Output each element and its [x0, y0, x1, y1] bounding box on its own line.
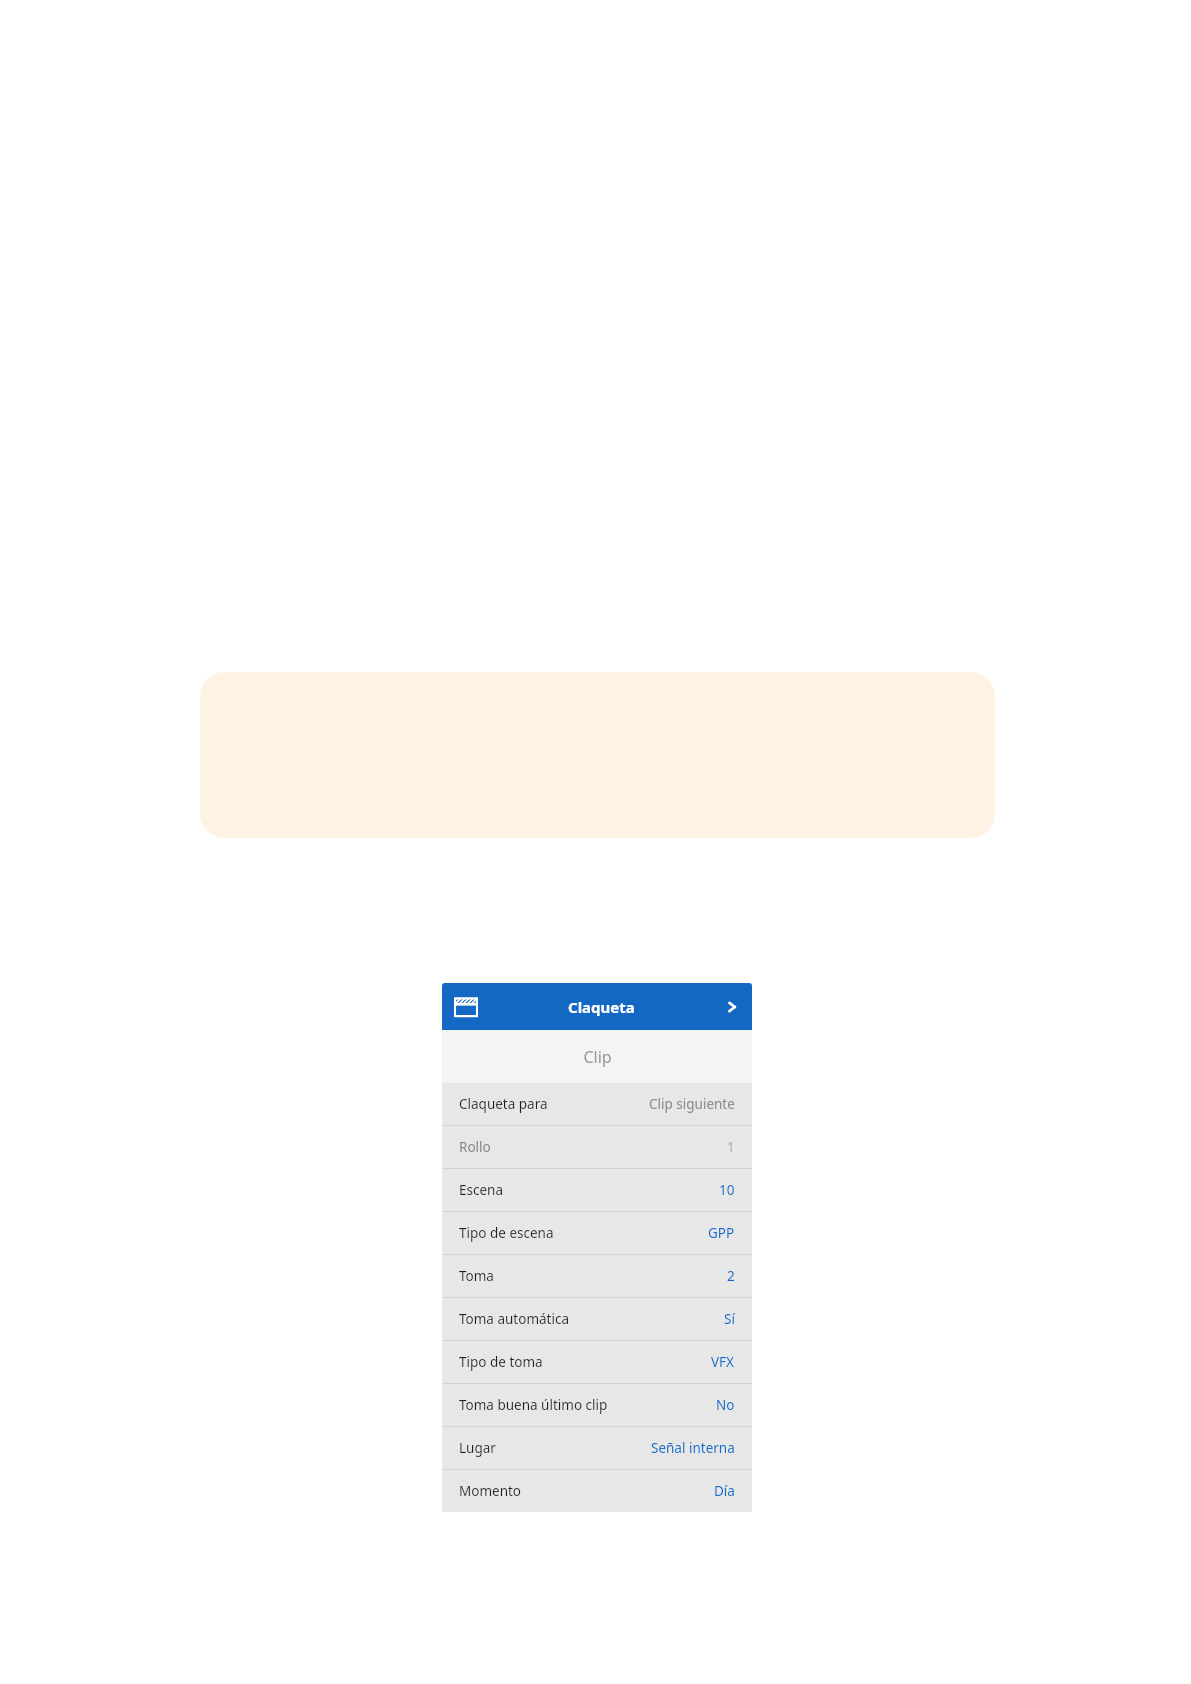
- staticText: Rollo: [459, 1138, 491, 1156]
- button[interactable]: Rollo: [442, 1126, 752, 1168]
- staticText: Lugar: [459, 1439, 496, 1457]
- staticText: 10: [719, 1181, 735, 1199]
- staticText: Tipo de toma: [459, 1353, 543, 1371]
- staticText: 1: [727, 1138, 735, 1156]
- staticText: Sí: [724, 1310, 735, 1328]
- staticText: Claqueta para: [459, 1095, 548, 1113]
- staticText: Escena: [459, 1181, 503, 1199]
- button[interactable]: Toma: [442, 1255, 752, 1297]
- button[interactable]: Escena: [442, 1169, 752, 1211]
- button[interactable]: Tipo de escena: [442, 1212, 752, 1254]
- staticText: Toma buena último clip: [459, 1396, 608, 1414]
- staticText: Claqueta: [568, 997, 635, 1017]
- button[interactable]: Claqueta para: [442, 1083, 752, 1125]
- staticText: Toma: [459, 1267, 494, 1285]
- staticText: VFX: [711, 1353, 735, 1371]
- staticText: GPP: [708, 1224, 735, 1242]
- button[interactable]: Toma automática: [442, 1298, 752, 1340]
- staticText: Clip siguiente: [649, 1095, 735, 1113]
- other: Abrir: [724, 999, 740, 1015]
- staticText: Clip: [583, 1046, 612, 1068]
- button[interactable]: Momento: [442, 1470, 752, 1512]
- button[interactable]: Tipo de toma: [442, 1341, 752, 1383]
- staticText: Tipo de escena: [459, 1224, 554, 1242]
- button[interactable]: Lugar: [442, 1427, 752, 1469]
- staticText: Día: [714, 1482, 735, 1500]
- other: Claqueta: [454, 995, 478, 1019]
- button[interactable]: Claqueta: [442, 983, 752, 1030]
- staticText: 2: [727, 1267, 735, 1285]
- button[interactable]: Toma buena último clip: [442, 1384, 752, 1426]
- staticText: Señal interna: [651, 1439, 735, 1457]
- staticText: Toma automática: [459, 1310, 569, 1328]
- staticText: No: [716, 1396, 735, 1414]
- staticText: Momento: [459, 1482, 522, 1500]
